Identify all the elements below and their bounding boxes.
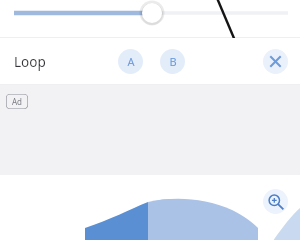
staticText: Ad <box>6 96 28 109</box>
staticText: Loop <box>14 53 46 71</box>
button[interactable]: B <box>160 49 185 74</box>
staticText: A <box>127 54 135 69</box>
button[interactable]: Zoom in <box>263 189 288 214</box>
button[interactable]: Close loop <box>263 49 288 74</box>
button[interactable]: Audio waveform <box>0 176 300 240</box>
button[interactable]: Playback position slider <box>0 0 300 32</box>
button[interactable]: A <box>118 49 143 74</box>
staticText: B <box>169 54 177 69</box>
button[interactable]: Loop <box>8 38 108 85</box>
button[interactable]: Ad <box>0 85 300 175</box>
